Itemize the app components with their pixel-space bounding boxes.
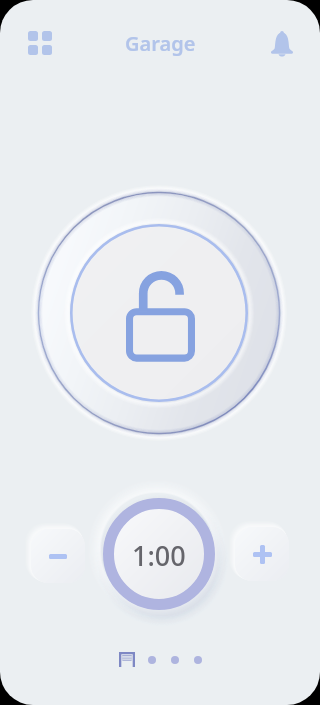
button[interactable]: Notifications <box>254 15 310 71</box>
button[interactable] <box>163 648 186 671</box>
staticText: 1:00 <box>132 537 186 574</box>
button[interactable]: Garage <box>115 647 139 671</box>
button[interactable] <box>140 648 163 671</box>
button[interactable]: Menu <box>12 15 68 71</box>
button[interactable]: Unlock garage door <box>24 178 294 448</box>
button[interactable]: Increase timer <box>235 527 289 581</box>
staticText: Garage <box>125 30 196 57</box>
button[interactable]: Timer one minute <box>83 478 235 630</box>
button[interactable] <box>186 648 209 671</box>
button[interactable]: Decrease timer <box>31 529 85 583</box>
